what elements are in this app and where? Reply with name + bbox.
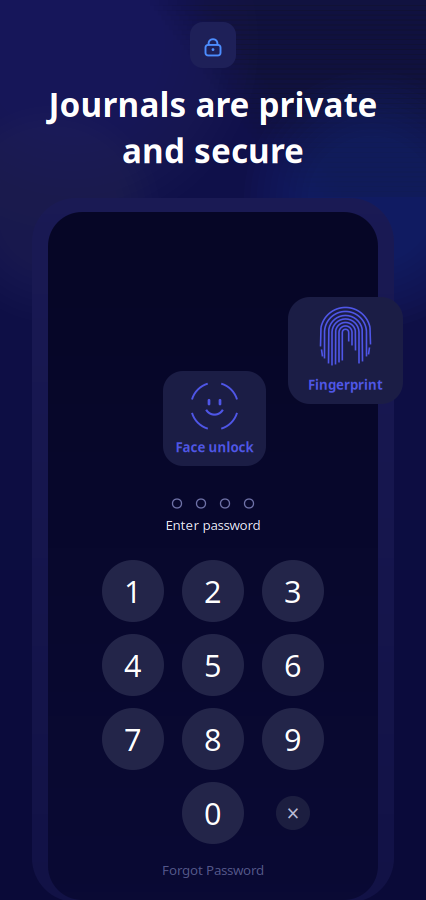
staticText: 7 [124, 719, 142, 759]
button[interactable]: 0 [182, 782, 244, 844]
staticText: Journals are private [48, 82, 377, 126]
staticText: Forgot Password [162, 861, 264, 879]
staticText: and secure [122, 128, 304, 173]
staticText: 1 [124, 571, 142, 611]
staticText: 3 [284, 571, 302, 611]
button[interactable]: 6 [262, 634, 324, 696]
staticText: Fingerprint [308, 376, 383, 393]
button[interactable]: 4 [102, 634, 164, 696]
staticText: 6 [284, 645, 302, 685]
button[interactable]: 3 [262, 560, 324, 622]
staticText: 2 [204, 571, 222, 611]
button[interactable]: Fingerprint [288, 297, 403, 404]
button[interactable]: 9 [262, 708, 324, 770]
staticText: 0 [204, 793, 222, 833]
staticText: 5 [204, 645, 222, 685]
staticText: × [286, 798, 299, 828]
button[interactable]: Forgot Password [0, 861, 426, 879]
button[interactable]: 8 [182, 708, 244, 770]
staticText: 4 [124, 645, 142, 685]
button[interactable]: 2 [182, 560, 244, 622]
button[interactable]: Face unlock [163, 371, 266, 466]
button[interactable]: 1 [102, 560, 164, 622]
staticText: Enter password [165, 516, 260, 534]
staticText: 9 [284, 719, 302, 759]
staticText: 8 [204, 719, 222, 759]
button[interactable]: 5 [182, 634, 244, 696]
button[interactable]: Delete [262, 782, 324, 844]
button[interactable]: 7 [102, 708, 164, 770]
staticText: Face unlock [175, 438, 253, 456]
